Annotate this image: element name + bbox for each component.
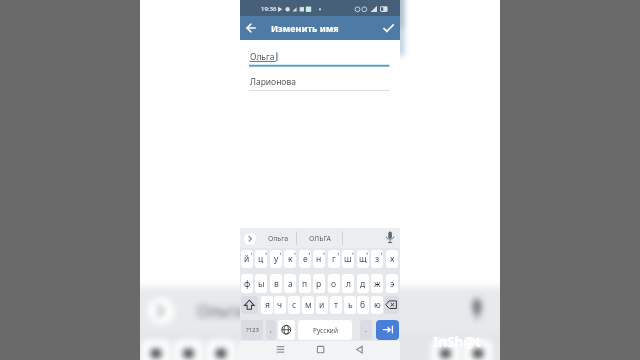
button[interactable] bbox=[248, 48, 392, 67]
staticText: е bbox=[303, 253, 308, 265]
button[interactable]: о bbox=[328, 274, 340, 293]
staticText: Ольга bbox=[268, 234, 289, 244]
button[interactable]: д bbox=[357, 274, 369, 293]
button[interactable]: э bbox=[386, 274, 398, 293]
button[interactable]: Русский bbox=[298, 320, 352, 340]
staticText: я bbox=[265, 299, 270, 311]
button[interactable]: ф bbox=[241, 274, 253, 293]
button[interactable]: . bbox=[360, 320, 372, 340]
button[interactable] bbox=[241, 296, 258, 314]
staticText: у bbox=[274, 253, 279, 265]
staticText: р bbox=[316, 278, 322, 290]
staticText: ф bbox=[244, 278, 251, 290]
button[interactable]: Ольга bbox=[260, 228, 296, 249]
button[interactable]: ш bbox=[342, 250, 354, 268]
staticText: ОЛЬГА bbox=[309, 234, 331, 244]
staticText: ю bbox=[374, 299, 381, 311]
staticText: Изменить имя bbox=[271, 22, 339, 34]
button[interactable]: п bbox=[299, 274, 311, 293]
staticText: и bbox=[319, 299, 325, 311]
button[interactable]: т bbox=[330, 296, 342, 314]
staticText: с bbox=[292, 299, 297, 311]
button[interactable] bbox=[376, 320, 399, 340]
button[interactable]: ь bbox=[344, 296, 356, 314]
button[interactable] bbox=[312, 342, 329, 358]
staticText: а bbox=[288, 278, 293, 290]
button[interactable] bbox=[244, 233, 256, 245]
button[interactable]: у bbox=[270, 250, 282, 268]
button[interactable]: к bbox=[284, 250, 296, 268]
button[interactable]: х bbox=[386, 250, 398, 268]
button[interactable]: я bbox=[261, 296, 273, 314]
button[interactable]: в bbox=[270, 274, 282, 293]
button[interactable]: щ bbox=[357, 250, 369, 268]
button[interactable] bbox=[272, 342, 289, 358]
staticText: з bbox=[375, 253, 380, 265]
staticText: г bbox=[332, 253, 336, 265]
staticText: х bbox=[390, 253, 395, 265]
button[interactable]: ОЛЬГА bbox=[297, 228, 342, 249]
staticText: о bbox=[331, 278, 337, 290]
button[interactable]: с bbox=[288, 296, 300, 314]
button[interactable] bbox=[384, 296, 399, 314]
button[interactable]: ю bbox=[371, 296, 383, 314]
button[interactable] bbox=[351, 342, 368, 358]
staticText: ж bbox=[374, 278, 381, 290]
staticText: м bbox=[305, 299, 312, 311]
button[interactable]: и bbox=[316, 296, 328, 314]
button[interactable]: б bbox=[357, 296, 369, 314]
button[interactable]: ч bbox=[274, 296, 286, 314]
button[interactable] bbox=[278, 320, 295, 340]
button[interactable]: з bbox=[371, 250, 383, 268]
button[interactable]: ы bbox=[255, 274, 267, 293]
button[interactable]: л bbox=[342, 274, 354, 293]
button[interactable]: ?123 bbox=[241, 320, 263, 340]
staticText: Ольга bbox=[250, 51, 275, 63]
staticText: т bbox=[334, 299, 338, 311]
staticText: д bbox=[360, 278, 366, 290]
staticText: InSh@t bbox=[433, 333, 482, 351]
button[interactable] bbox=[248, 73, 392, 90]
staticText: н bbox=[316, 253, 322, 265]
button[interactable]: р bbox=[313, 274, 325, 293]
staticText: в bbox=[274, 278, 279, 290]
staticText: Ларионова bbox=[250, 76, 296, 88]
staticText: л bbox=[346, 278, 351, 290]
staticText: Русский bbox=[313, 326, 338, 335]
staticText: . bbox=[365, 325, 367, 335]
button[interactable]: н bbox=[313, 250, 325, 268]
button[interactable]: а bbox=[284, 274, 296, 293]
staticText: щ bbox=[359, 253, 367, 265]
staticText: б bbox=[360, 299, 366, 311]
button[interactable]: ж bbox=[371, 274, 383, 293]
staticText: ш bbox=[344, 253, 352, 265]
staticText: п bbox=[302, 278, 308, 290]
button[interactable]: ц bbox=[255, 250, 267, 268]
staticText: э bbox=[390, 278, 395, 290]
button[interactable]: й bbox=[241, 250, 253, 268]
button[interactable] bbox=[380, 20, 397, 36]
staticText: 19:36 bbox=[261, 5, 277, 13]
button[interactable]: м bbox=[302, 296, 314, 314]
staticText: й bbox=[244, 253, 250, 265]
staticText: ?123 bbox=[246, 326, 259, 334]
button[interactable]: г bbox=[328, 250, 340, 268]
button[interactable]: , bbox=[266, 320, 276, 340]
staticText: , bbox=[270, 325, 272, 335]
staticText: ц bbox=[258, 253, 264, 265]
staticText: к bbox=[288, 253, 293, 265]
staticText: Ольга bbox=[197, 300, 244, 322]
staticText: ы bbox=[258, 278, 265, 290]
button[interactable]: е bbox=[299, 250, 311, 268]
staticText: ь bbox=[348, 299, 353, 311]
button[interactable] bbox=[243, 20, 259, 36]
staticText: ч bbox=[277, 299, 283, 311]
